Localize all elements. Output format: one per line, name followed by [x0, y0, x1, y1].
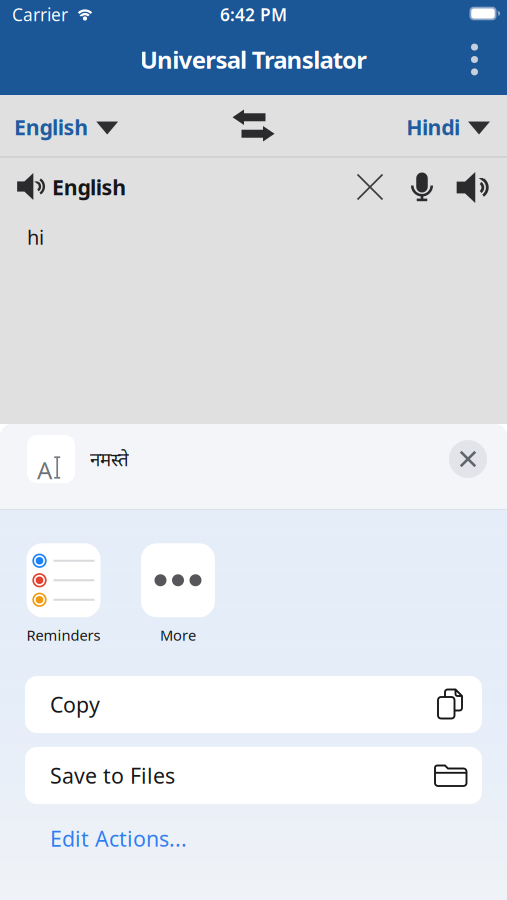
button[interactable] — [357, 174, 382, 199]
button[interactable] — [449, 440, 487, 478]
staticText: Copy — [50, 690, 100, 719]
button[interactable] — [17, 173, 47, 200]
staticText: नमस्ते — [90, 447, 129, 471]
staticText: Reminders — [26, 625, 100, 645]
button[interactable] — [232, 109, 274, 141]
staticText: English — [14, 113, 88, 141]
staticText: Carrier — [12, 3, 68, 26]
button[interactable]: English — [14, 113, 118, 141]
staticText: hi — [27, 224, 44, 250]
staticText: 6:42 PM — [220, 3, 287, 26]
staticText: Save to Files — [50, 761, 175, 790]
staticText: English — [52, 173, 126, 201]
button[interactable] — [459, 37, 489, 81]
staticText: Hindi — [406, 113, 460, 141]
button[interactable]: Hindi — [406, 113, 490, 141]
button[interactable] — [411, 172, 433, 201]
button[interactable]: Save to Files — [25, 747, 482, 804]
staticText: A — [37, 454, 52, 486]
staticText: Universal Translator — [140, 44, 367, 75]
staticText: Edit Actions... — [50, 824, 187, 853]
button[interactable]: Reminders — [26, 543, 100, 645]
button[interactable]: Copy — [25, 676, 482, 733]
staticText: More — [160, 625, 196, 645]
button[interactable]: More — [141, 543, 215, 645]
button[interactable] — [457, 172, 490, 203]
button[interactable]: Edit Actions... — [50, 824, 187, 853]
